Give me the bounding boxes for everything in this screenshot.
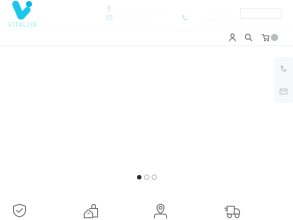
button[interactable]: Call us	[274, 57, 293, 80]
button[interactable]: Slide 1	[137, 175, 141, 179]
button[interactable]: Cart	[260, 31, 280, 44]
button[interactable]: Search field	[240, 8, 282, 19]
button[interactable]: Account	[226, 31, 239, 44]
button[interactable]: Vitaliya home	[7, 1, 37, 29]
button[interactable]: Phone	[182, 14, 236, 21]
button[interactable]: Slide 2	[144, 175, 149, 179]
button[interactable]: Wide assortment	[84, 204, 98, 218]
button[interactable]: Slide 3	[152, 175, 156, 179]
button[interactable]: Search	[242, 31, 255, 44]
button[interactable]: Guaranteed quality	[13, 204, 26, 217]
staticText: VITALIYA	[7, 20, 37, 29]
button[interactable]: Pickup points	[154, 204, 167, 218]
button[interactable]: Email us	[274, 80, 293, 103]
button[interactable]: Fast delivery	[225, 204, 240, 218]
button[interactable]: Email	[107, 14, 152, 21]
button[interactable]: Address	[107, 5, 170, 12]
